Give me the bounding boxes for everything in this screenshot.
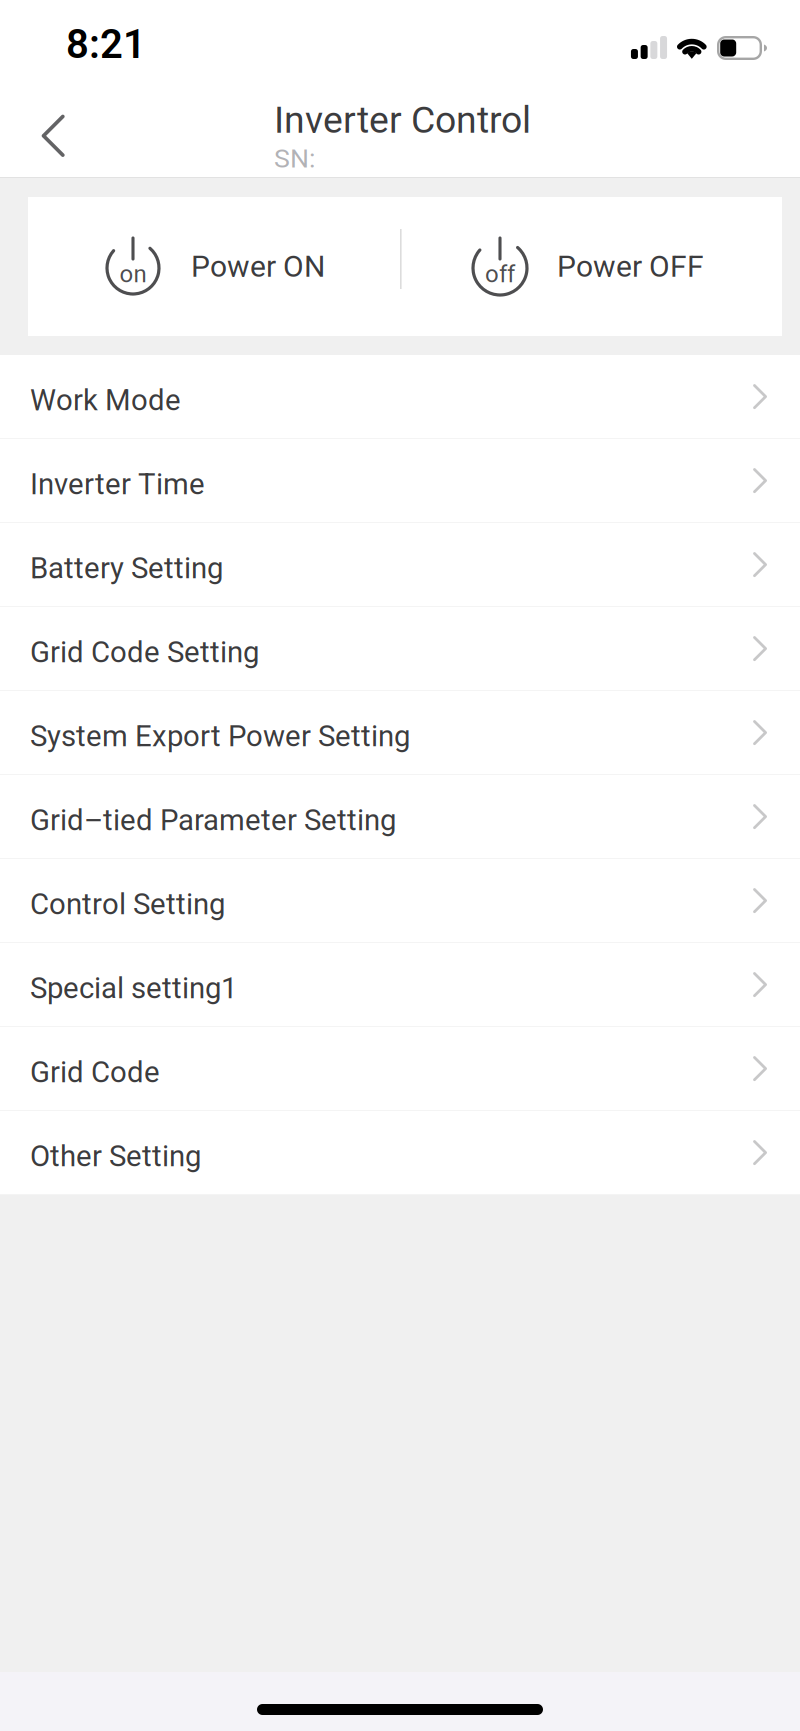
button[interactable]: on: [28, 197, 368, 336]
button[interactable]: Battery Setting: [0, 523, 800, 607]
button[interactable]: Other Setting: [0, 1111, 800, 1195]
button[interactable]: Grid Code Setting: [0, 607, 800, 691]
button[interactable]: Back: [18, 100, 88, 172]
staticText: Battery Setting: [30, 551, 223, 585]
button[interactable]: Work Mode: [0, 355, 800, 439]
button[interactable]: off: [442, 197, 782, 336]
staticText: Inverter Time: [30, 467, 205, 501]
staticText: Work Mode: [30, 383, 181, 417]
button[interactable]: Control Setting: [0, 859, 800, 943]
staticText: Special setting1: [30, 971, 237, 1005]
staticText: Power ON: [191, 249, 325, 284]
staticText: Grid–tied Parameter Setting: [30, 803, 396, 837]
button[interactable]: Special setting1: [0, 943, 800, 1027]
staticText: SN:: [274, 143, 315, 174]
staticText: off: [485, 260, 515, 288]
button[interactable]: Inverter Time: [0, 439, 800, 523]
button[interactable]: Grid Code: [0, 1027, 800, 1111]
staticText: Other Setting: [30, 1139, 201, 1173]
staticText: Inverter Control: [274, 98, 531, 142]
button[interactable]: System Export Power Setting: [0, 691, 800, 775]
staticText: Grid Code: [30, 1055, 160, 1089]
staticText: 8:21: [66, 21, 146, 68]
staticText: Control Setting: [30, 887, 225, 921]
staticText: Power OFF: [557, 249, 704, 284]
staticText: Grid Code Setting: [30, 635, 259, 669]
staticText: System Export Power Setting: [30, 719, 410, 753]
button[interactable]: Grid–tied Parameter Setting: [0, 775, 800, 859]
staticText: on: [119, 260, 146, 288]
